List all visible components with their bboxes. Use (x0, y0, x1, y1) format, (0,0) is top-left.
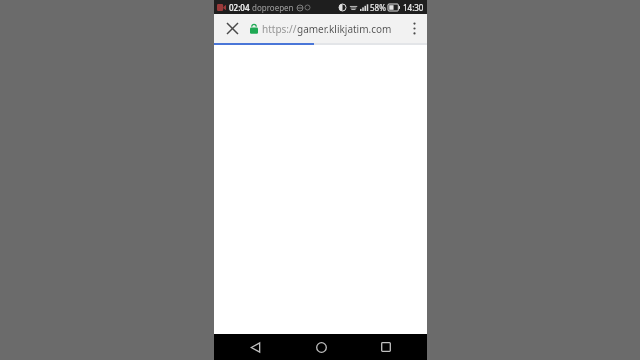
button[interactable]: Back (230, 334, 280, 360)
staticText: 58% (370, 2, 386, 13)
staticText: https:// (262, 22, 297, 36)
button[interactable]: Home (296, 334, 346, 360)
button[interactable]: More options (401, 14, 427, 43)
button[interactable]: Close (214, 14, 250, 43)
staticText: 14:30 (403, 2, 424, 13)
staticText: gamer.klikjatim.com (297, 22, 392, 36)
staticText: 02:04 (229, 2, 250, 13)
button[interactable]: Recent apps (361, 334, 411, 360)
staticText: doproepen (252, 2, 294, 13)
button[interactable]: https:// (250, 14, 401, 43)
